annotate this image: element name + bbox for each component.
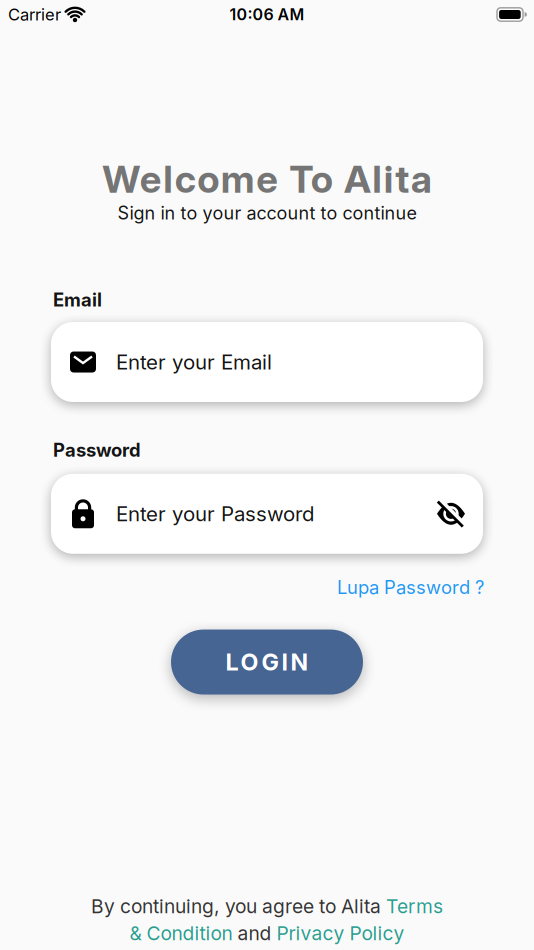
staticText: Privacy Policy	[276, 922, 404, 945]
staticText: Lupa Password ?	[337, 576, 484, 599]
staticText: & Condition	[129, 922, 232, 945]
button[interactable]: Enter your Password	[51, 474, 483, 554]
staticText: Carrier	[8, 4, 61, 24]
staticText: LOGIN	[225, 648, 308, 676]
button[interactable]: Terms	[386, 894, 443, 918]
button[interactable]: Privacy Policy	[276, 922, 404, 945]
staticText: Password	[53, 439, 141, 461]
button[interactable]: LOGIN	[171, 629, 363, 694]
staticText: Email	[53, 289, 102, 311]
button[interactable]: Enter your Email	[51, 322, 483, 402]
staticText: and	[232, 922, 276, 945]
staticText: Terms	[386, 894, 443, 918]
button[interactable]: Lupa Password ?	[337, 576, 484, 599]
staticText: Sign in to your account to continue	[117, 202, 416, 224]
staticText: Enter your Password	[116, 501, 315, 526]
staticText: Welcome To Alita	[102, 156, 432, 202]
button[interactable]: & Condition	[129, 922, 232, 945]
staticText: By continuing, you agree to Alita	[91, 894, 386, 918]
staticText: 10:06 AM	[229, 5, 304, 24]
staticText: Enter your Email	[116, 350, 272, 374]
